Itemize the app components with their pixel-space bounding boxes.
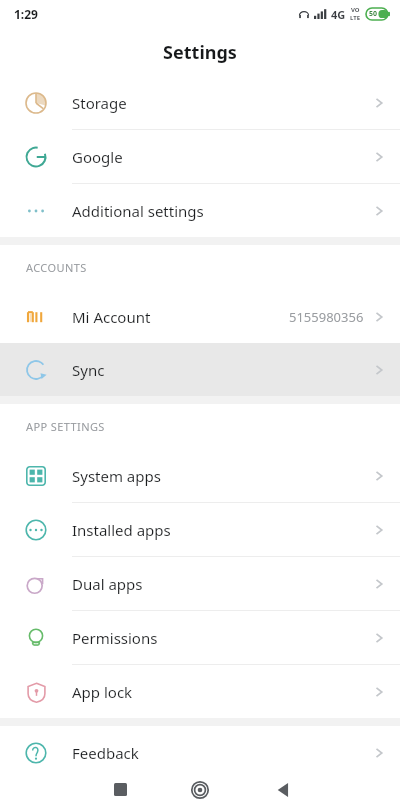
button[interactable]: System apps <box>0 449 400 502</box>
button[interactable]: Dual apps <box>0 557 400 610</box>
staticText: Google <box>72 147 123 167</box>
staticText: Sync <box>72 360 105 380</box>
staticText: Permissions <box>72 628 158 648</box>
staticText: 50 <box>369 9 378 19</box>
button[interactable]: Additional settings <box>0 184 400 237</box>
button[interactable]: Home <box>182 779 218 800</box>
staticText: VO <box>351 6 360 14</box>
staticText: Storage <box>72 93 127 113</box>
staticText: LTE <box>350 14 361 22</box>
staticText: 5155980356 <box>289 308 364 326</box>
staticText: Additional settings <box>72 201 204 221</box>
button[interactable]: Feedback <box>0 726 400 779</box>
button[interactable]: Mi Account <box>0 290 400 343</box>
staticText: Dual apps <box>72 574 143 594</box>
staticText: Settings <box>163 40 237 65</box>
staticText: System apps <box>72 466 161 486</box>
button[interactable]: Recents <box>104 779 136 800</box>
button[interactable]: Installed apps <box>0 503 400 556</box>
staticText: Mi Account <box>72 307 151 327</box>
button[interactable]: Google <box>0 130 400 183</box>
staticText: ACCOUNTS <box>26 260 87 275</box>
staticText: APP SETTINGS <box>26 419 105 434</box>
button[interactable]: Back <box>267 779 299 800</box>
button[interactable]: Sync <box>0 343 400 396</box>
staticText: App lock <box>72 682 133 702</box>
button[interactable]: App lock <box>0 665 400 718</box>
staticText: Feedback <box>72 743 139 763</box>
staticText: 1:29 <box>14 6 38 22</box>
button[interactable]: Permissions <box>0 611 400 664</box>
button[interactable]: Storage <box>0 76 400 129</box>
staticText: 4G <box>331 7 346 22</box>
staticText: Installed apps <box>72 520 171 540</box>
